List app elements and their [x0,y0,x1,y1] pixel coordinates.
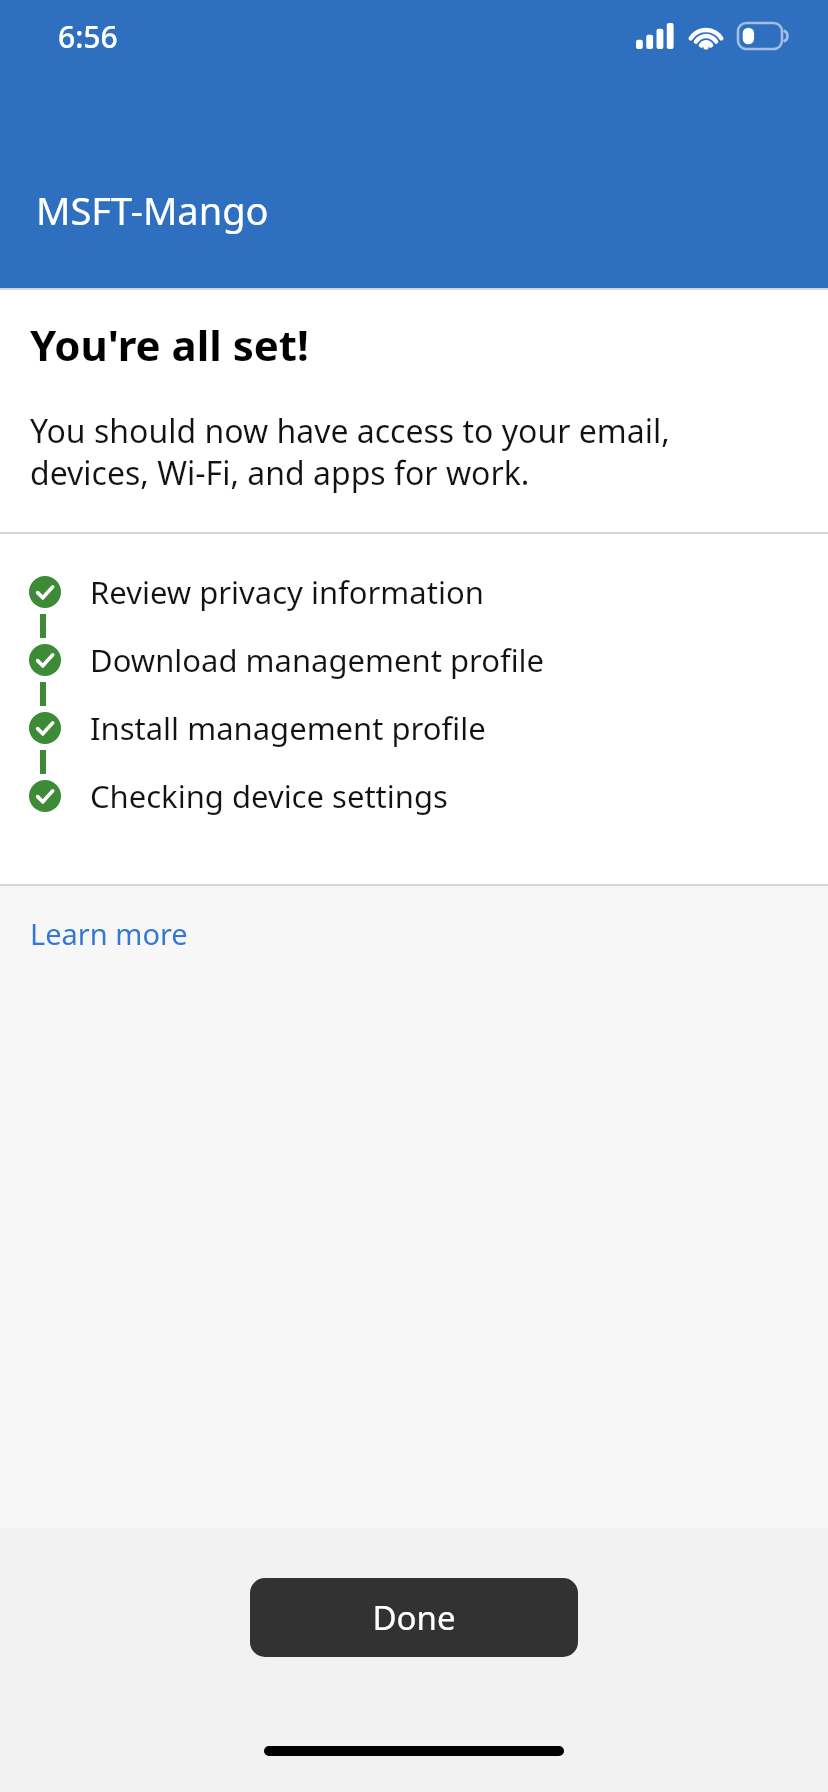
button[interactable]: Review privacy information [0,558,828,626]
button[interactable]: Learn more [0,904,218,963]
other: Battery [738,23,788,49]
staticText: 6:56 [58,16,118,57]
staticText: Review privacy information [90,571,484,613]
button[interactable]: Checking device settings [0,762,828,830]
staticText: Done [372,1595,456,1640]
other: Cellular signal [636,23,674,49]
staticText: MSFT-Mango [36,184,269,236]
button[interactable]: Download management profile [0,626,828,694]
staticText: Learn more [30,914,188,953]
button[interactable]: Install management profile [0,694,828,762]
staticText: You're all set! [30,316,309,373]
button[interactable]: Done [250,1578,578,1657]
other: Wi-Fi [688,23,724,49]
staticText: Download management profile [90,639,545,681]
staticText: You should now have access to your email… [30,409,670,494]
staticText: Install management profile [90,707,486,749]
staticText: Checking device settings [90,775,448,817]
